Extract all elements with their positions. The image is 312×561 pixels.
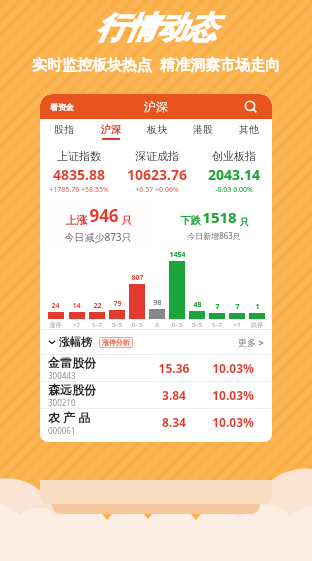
- staticText: 今日新增863只: [187, 230, 241, 241]
- staticText: 涨幅榜: [59, 335, 92, 349]
- staticText: 只: [119, 213, 132, 227]
- staticText: +6.57 +0.06%: [135, 185, 179, 195]
- staticText: 48: [193, 300, 202, 310]
- staticText: 807: [131, 273, 144, 283]
- staticText: 上证指数: [57, 149, 101, 163]
- staticText: 10623.76: [127, 165, 187, 184]
- staticText: 下跌: [179, 213, 202, 227]
- staticText: +1785.76 +58.55%: [49, 185, 109, 195]
- staticText: 1: [255, 302, 260, 312]
- staticText: 港股: [193, 123, 213, 136]
- staticText: 0~3: [167, 321, 187, 329]
- staticText: 98: [153, 298, 162, 308]
- button[interactable]: 其他: [226, 119, 272, 144]
- staticText: 沪深: [144, 99, 168, 114]
- staticText: 10.03%: [202, 387, 264, 403]
- staticText: 300443: [48, 370, 76, 381]
- staticText: 农 产 品: [48, 409, 91, 425]
- staticText: 000061: [48, 425, 76, 435]
- staticText: 金雷股份: [48, 355, 96, 370]
- staticText: 行情动态: [96, 9, 216, 47]
- staticText: 更多: [238, 337, 256, 348]
- staticText: 14: [72, 301, 81, 311]
- staticText: 10.03%: [202, 360, 264, 376]
- button[interactable]: 沪深: [87, 119, 134, 144]
- button[interactable]: 金雷股份: [40, 355, 272, 381]
- staticText: 今日减少873只: [64, 230, 132, 244]
- staticText: 实时监控板块热点 精准洞察市场走向: [32, 54, 280, 74]
- staticText: 看资金: [50, 102, 74, 112]
- staticText: 3~5: [107, 321, 127, 329]
- staticText: 森远股份: [48, 382, 96, 397]
- staticText: >7: [66, 321, 87, 329]
- button[interactable]: 港股: [180, 119, 226, 144]
- button[interactable]: 看资金: [48, 100, 76, 114]
- button[interactable]: 森远股份: [40, 382, 272, 408]
- staticText: 4835.88: [53, 165, 105, 184]
- staticText: 5~7: [87, 321, 107, 329]
- staticText: 上涨: [64, 212, 89, 227]
- staticText: 只: [237, 215, 249, 227]
- staticText: 7: [215, 302, 220, 312]
- button[interactable]: 上涨: [43, 202, 153, 246]
- staticText: 板块: [147, 123, 167, 136]
- staticText: 10.03%: [202, 414, 264, 430]
- staticText: 涨停: [45, 321, 66, 329]
- button[interactable]: Search: [240, 96, 262, 118]
- staticText: >7: [227, 321, 247, 329]
- button[interactable]: 股指: [40, 119, 87, 144]
- staticText: 3.84: [146, 387, 202, 403]
- staticText: -0.03 0.00%: [215, 185, 253, 195]
- staticText: 沪深: [101, 123, 121, 136]
- staticText: 深证成指: [135, 149, 179, 163]
- staticText: 22: [93, 301, 102, 311]
- staticText: 1454: [169, 250, 186, 260]
- staticText: 股指: [54, 123, 74, 136]
- staticText: 3~5: [187, 321, 207, 329]
- staticText: 79: [113, 299, 122, 309]
- staticText: 0~3: [127, 321, 147, 329]
- button[interactable]: 涨停分析: [99, 337, 133, 348]
- staticText: 创业板指: [212, 149, 256, 163]
- staticText: 跌停: [247, 321, 267, 329]
- button[interactable]: 更多: [238, 337, 264, 348]
- staticText: 5~7: [207, 321, 227, 329]
- staticText: 24: [51, 301, 60, 311]
- staticText: 1518: [202, 207, 237, 227]
- staticText: 15.36: [146, 360, 202, 376]
- staticText: 其他: [239, 123, 259, 136]
- button[interactable]: 涨幅榜: [48, 335, 92, 349]
- staticText: 8.34: [146, 414, 202, 430]
- button[interactable]: 农 产 品: [40, 409, 272, 435]
- staticText: 7: [235, 302, 240, 312]
- staticText: 涨停分析: [102, 338, 130, 347]
- staticText: 946: [89, 204, 119, 227]
- staticText: 2043.14: [208, 165, 260, 184]
- button[interactable]: 板块: [134, 119, 180, 144]
- button[interactable]: 下跌: [156, 199, 272, 249]
- staticText: 300210: [48, 397, 76, 408]
- staticText: 0: [147, 321, 167, 329]
